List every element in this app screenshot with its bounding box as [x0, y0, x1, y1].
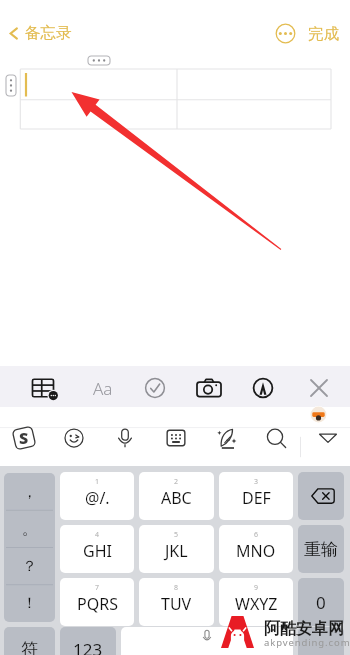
button[interactable]: 1 [60, 472, 134, 520]
staticText: S [19, 427, 29, 449]
staticText: TUV [161, 593, 192, 615]
staticText: 7 [95, 583, 100, 593]
button[interactable]: ， [4, 473, 55, 511]
staticText: ？ [22, 557, 37, 576]
staticText: DEF [242, 487, 271, 509]
staticText: 123 [73, 638, 103, 655]
staticText: 4 [95, 530, 100, 540]
staticText: WXYZ [235, 593, 278, 615]
staticText: 5 [174, 530, 179, 540]
button[interactable]: 符 [4, 627, 55, 655]
button[interactable]: 0 [298, 578, 344, 626]
button[interactable]: 9 [219, 578, 293, 626]
button[interactable]: Emoji [53, 417, 95, 459]
staticText: MNO [236, 540, 276, 562]
staticText: ， [22, 483, 37, 502]
button[interactable]: Checklist [135, 366, 175, 407]
staticText: Aa [93, 377, 113, 400]
staticText: 9 [254, 583, 259, 593]
button[interactable]: 123 [60, 627, 116, 655]
staticText: 1 [95, 477, 100, 487]
staticText: @/. [85, 487, 110, 509]
button[interactable]: Handwriting [206, 417, 248, 459]
staticText: 3 [254, 477, 259, 487]
staticText: 6 [254, 530, 259, 540]
button[interactable]: Sogou input settings [3, 417, 45, 459]
button[interactable]: Profile [310, 406, 327, 423]
button[interactable]: 2 [139, 472, 214, 520]
button[interactable]: Space, voice input [121, 627, 293, 655]
staticText: 2 [174, 477, 179, 487]
button[interactable]: 重输 [298, 525, 344, 573]
button[interactable]: Backspace [298, 472, 344, 520]
staticText: 完成 [308, 24, 339, 44]
button[interactable]: 完成 [308, 24, 339, 44]
button[interactable]: Voice input [104, 417, 146, 459]
button[interactable]: 3 [219, 472, 293, 520]
button[interactable]: Markup [243, 366, 283, 407]
button[interactable]: 4 [60, 525, 134, 573]
staticText: GHI [83, 540, 112, 562]
staticText: 。 [22, 520, 37, 539]
button[interactable]: 备忘录 [5, 23, 72, 43]
staticText: 重输 [304, 539, 338, 560]
staticText: ABC [161, 487, 192, 509]
button[interactable]: 。 [4, 511, 55, 548]
button[interactable]: Close [299, 366, 339, 407]
staticText: 8 [174, 583, 179, 593]
button[interactable]: Search [255, 417, 297, 459]
staticText: JKL [165, 540, 188, 562]
button[interactable]: More options [275, 23, 296, 44]
button[interactable]: Enter [298, 627, 344, 655]
button[interactable]: 6 [219, 525, 293, 573]
button[interactable]: Camera [189, 366, 229, 407]
button[interactable]: Column handle [88, 56, 110, 65]
staticText: 阿酷安卓网 [264, 619, 344, 639]
button[interactable]: 8 [139, 578, 214, 626]
button[interactable]: ！ [4, 585, 55, 622]
staticText: 备忘录 [25, 23, 72, 43]
staticText: PQRS [77, 593, 118, 615]
button[interactable]: Row handle [6, 75, 16, 96]
button[interactable]: 5 [139, 525, 214, 573]
staticText: 0 [316, 591, 326, 614]
staticText: akpvending.com [264, 636, 350, 649]
button[interactable]: Text formatting [83, 366, 123, 407]
staticText: 符 [21, 639, 38, 655]
button[interactable]: Keyboard layout [155, 417, 197, 459]
staticText: ！ [22, 594, 37, 613]
button[interactable]: Insert table [24, 366, 64, 407]
button[interactable]: ？ [4, 548, 55, 585]
button[interactable]: 7 [60, 578, 134, 626]
button[interactable]: Hide keyboard [307, 417, 349, 459]
